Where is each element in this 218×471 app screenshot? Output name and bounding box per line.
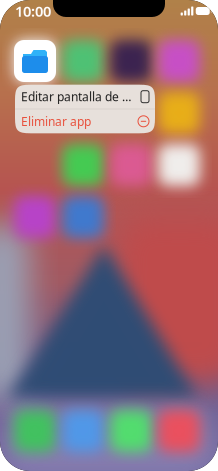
button[interactable]: Eliminar app <box>15 109 155 133</box>
staticText: Eliminar app <box>21 113 91 129</box>
staticText: 10:00 <box>15 1 51 21</box>
staticText: Editar pantalla de inicio <box>21 89 133 105</box>
button[interactable]: Editar pantalla de inicio <box>15 85 155 109</box>
